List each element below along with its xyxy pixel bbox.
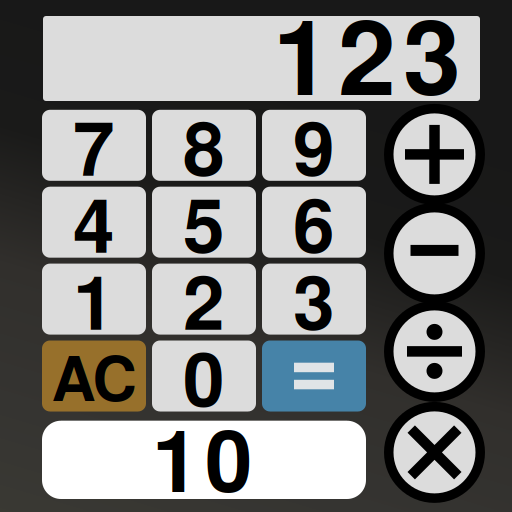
button[interactable]: Result display (43, 16, 480, 101)
button[interactable]: Entry field (42, 421, 366, 499)
staticText: 9 (293, 92, 335, 199)
staticText: 7 (73, 92, 115, 199)
button[interactable]: 8 (152, 110, 256, 181)
button[interactable]: Add (384, 104, 485, 205)
staticText: 8 (183, 92, 225, 199)
button[interactable]: 4 (42, 187, 146, 258)
staticText: 4 (73, 169, 115, 276)
button[interactable]: Subtract (384, 203, 485, 304)
staticText: 1 (73, 246, 115, 352)
staticText: 10 (152, 396, 252, 512)
staticText: AC (51, 332, 136, 420)
button[interactable]: 3 (262, 264, 366, 335)
button[interactable]: 1 (42, 264, 146, 335)
button[interactable]: 5 (152, 187, 256, 258)
button[interactable]: Multiply (384, 402, 485, 503)
button[interactable]: 9 (262, 110, 366, 181)
staticText: 3 (293, 246, 335, 352)
staticText: 2 (183, 246, 225, 352)
staticText: 123 (273, 0, 461, 127)
button[interactable]: 2 (152, 264, 256, 335)
button[interactable]: 7 (42, 110, 146, 181)
button[interactable]: 0 (152, 340, 256, 411)
button[interactable]: Equals (262, 340, 366, 411)
button[interactable]: 6 (262, 187, 366, 258)
button[interactable]: Divide (384, 301, 485, 402)
staticText: 5 (183, 169, 225, 276)
staticText: 6 (293, 169, 335, 276)
button[interactable]: AC (42, 340, 146, 411)
staticText: 0 (183, 322, 225, 429)
